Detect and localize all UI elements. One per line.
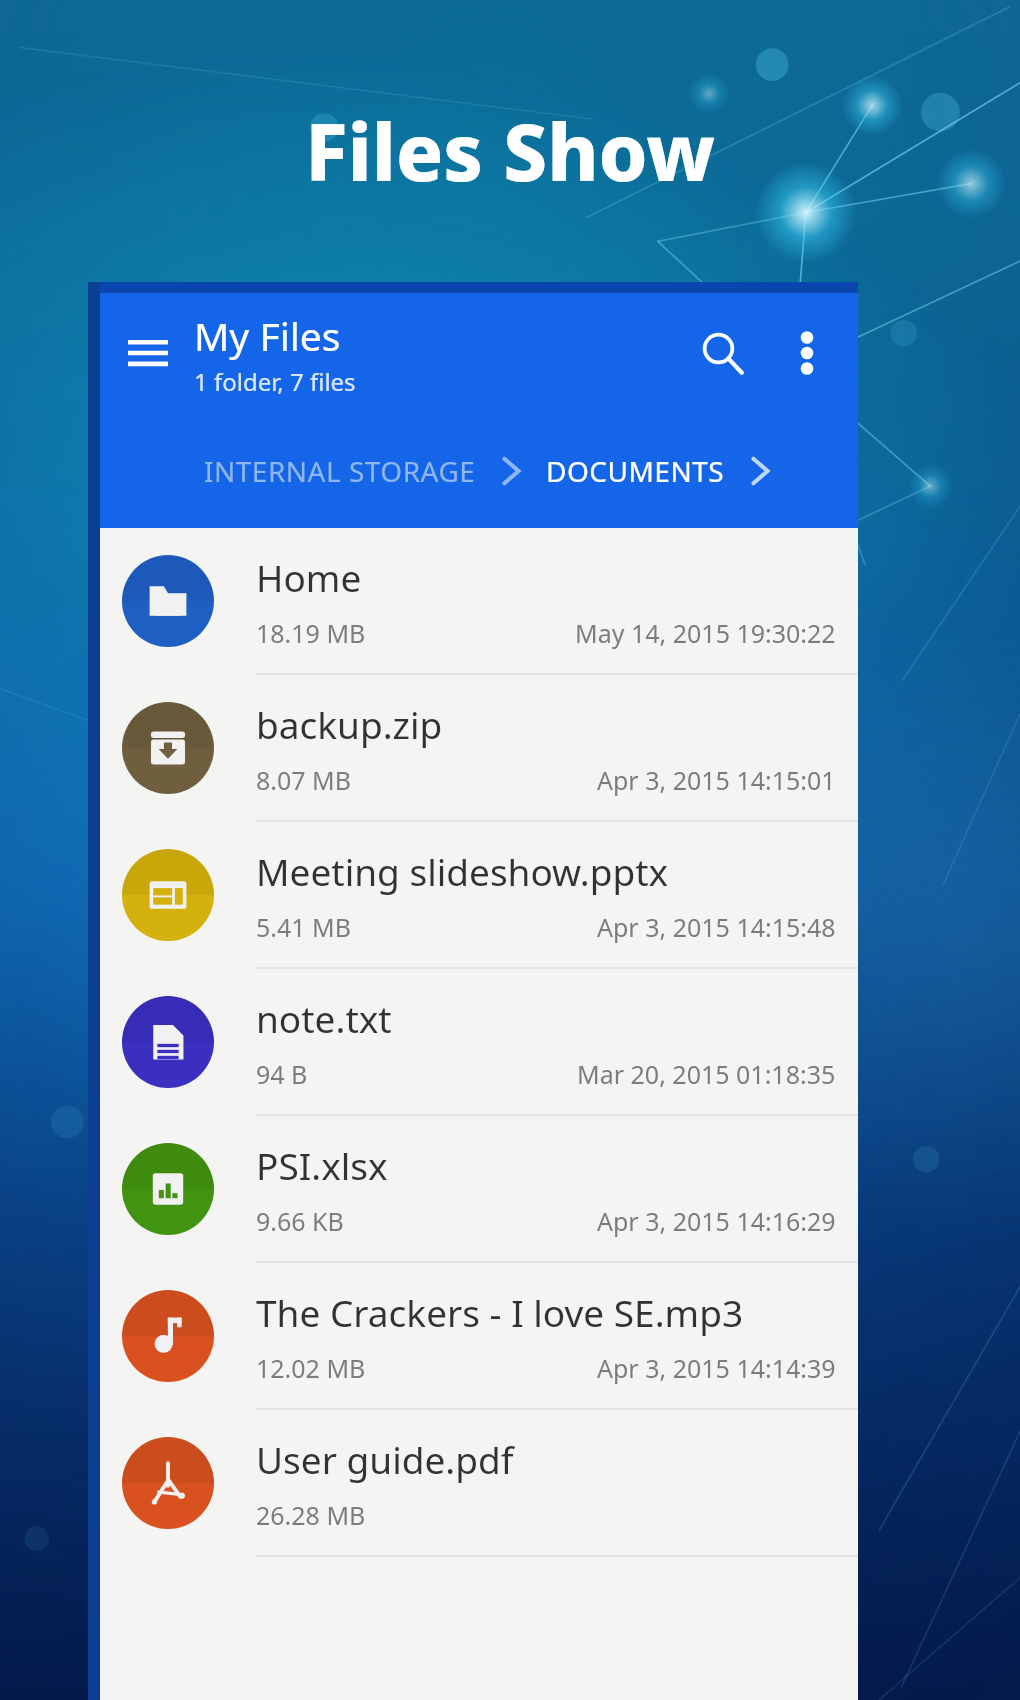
staticText: Apr 3, 2015 14:15:48 [597,910,836,944]
button[interactable]: INTERNAL STORAGE [204,452,476,490]
button[interactable]: The Crackers - I love SE.mp3 [100,1263,858,1408]
staticText: 8.07 MB [256,763,352,797]
staticText: Home [256,552,362,602]
staticText: backup.zip [256,699,443,749]
staticText: 5.41 MB [256,910,352,944]
staticText: Apr 3, 2015 14:14:39 [597,1351,836,1385]
staticText: May 14, 2015 19:30:22 [575,616,836,650]
staticText: My Files [194,309,341,362]
button[interactable]: More options [766,312,848,394]
staticText: 26.28 MB [256,1498,366,1532]
staticText: Meeting slideshow.pptx [256,846,669,896]
button[interactable]: User guide.pdf [100,1410,858,1555]
button[interactable]: PSI.xlsx [100,1116,858,1261]
button[interactable]: backup.zip [100,675,858,820]
staticText: 1 folder, 7 files [194,365,356,398]
staticText: The Crackers - I love SE.mp3 [256,1287,744,1337]
button[interactable]: Open navigation drawer [114,319,182,387]
button[interactable]: Home [100,528,858,673]
button[interactable]: DOCUMENTS [546,452,725,490]
staticText: Mar 20, 2015 01:18:35 [577,1057,836,1091]
staticText: DOCUMENTS [546,452,725,490]
staticText: PSI.xlsx [256,1140,388,1190]
staticText: Apr 3, 2015 14:15:01 [597,763,836,797]
staticText: 94 B [256,1057,308,1091]
staticText: 18.19 MB [256,616,366,650]
button[interactable]: note.txt [100,969,858,1114]
staticText: Apr 3, 2015 14:16:29 [597,1204,836,1238]
staticText: Files Show [0,98,1020,204]
staticText: User guide.pdf [256,1434,514,1484]
staticText: 12.02 MB [256,1351,366,1385]
button[interactable]: Search [678,309,766,397]
staticText: INTERNAL STORAGE [204,452,476,490]
button[interactable]: Meeting slideshow.pptx [100,822,858,967]
staticText: 9.66 KB [256,1204,344,1238]
staticText: note.txt [256,993,392,1043]
